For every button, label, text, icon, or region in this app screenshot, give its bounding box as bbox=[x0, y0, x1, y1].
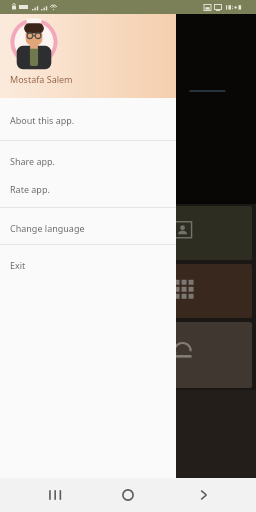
button[interactable]: Mostafa Salem bbox=[0, 14, 176, 98]
button[interactable]: Recents bbox=[30, 478, 76, 512]
staticText: Rate app. bbox=[10, 183, 50, 195]
staticText: Mostafa Salem bbox=[10, 73, 73, 85]
button[interactable]: Rate app. bbox=[0, 175, 176, 203]
button[interactable]: Exit bbox=[0, 251, 176, 279]
button[interactable] bbox=[4, 322, 252, 388]
button[interactable]: Back bbox=[181, 478, 227, 512]
staticText: Change language bbox=[10, 222, 85, 234]
button[interactable]: Share app. bbox=[0, 147, 176, 175]
button[interactable]: Home bbox=[105, 478, 151, 512]
staticText: About this app. bbox=[10, 114, 75, 126]
button[interactable] bbox=[4, 206, 252, 260]
staticText: Exit bbox=[10, 259, 26, 271]
staticText: Share app. bbox=[10, 155, 56, 167]
button[interactable] bbox=[4, 264, 252, 318]
button[interactable]: Change language bbox=[0, 214, 176, 242]
button[interactable]: About this app. bbox=[0, 106, 176, 134]
